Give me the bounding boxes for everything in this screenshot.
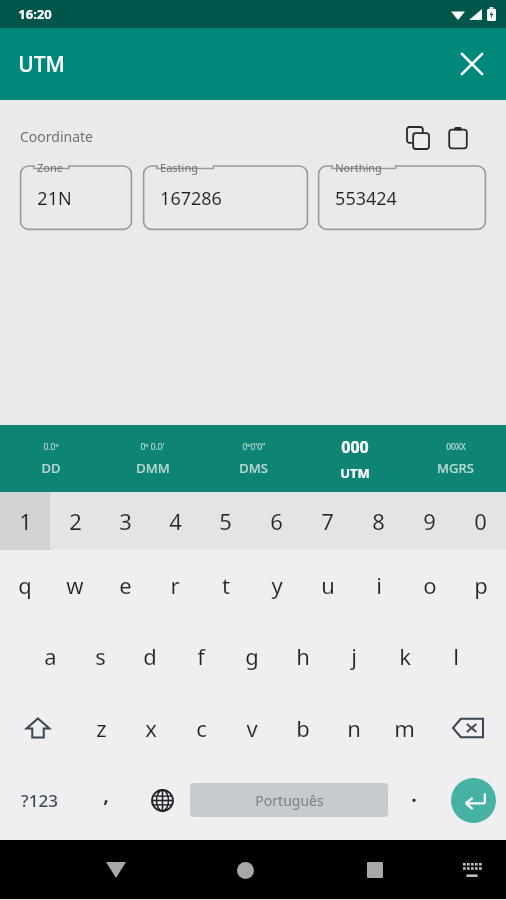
button[interactable]: Enter — [440, 764, 506, 836]
button[interactable]: q — [0, 550, 50, 620]
staticText: 21N — [37, 186, 72, 211]
staticText: q — [18, 570, 32, 600]
button[interactable]: f — [175, 620, 226, 692]
button[interactable]: h — [277, 620, 328, 692]
button[interactable]: 00XX — [405, 425, 506, 492]
staticText: Zone — [37, 160, 63, 175]
button[interactable]: y — [251, 550, 302, 620]
staticText: e — [119, 570, 132, 600]
button[interactable]: 6 — [251, 492, 302, 550]
staticText: 6 — [270, 506, 283, 536]
button[interactable]: , — [78, 764, 134, 836]
staticText: n — [347, 713, 361, 743]
button[interactable]: s — [75, 620, 125, 692]
staticText: 000 — [341, 436, 369, 458]
button[interactable]: Northing — [318, 160, 486, 230]
button[interactable]: 0.0º — [0, 425, 102, 492]
button[interactable]: . — [388, 764, 440, 836]
button[interactable]: 8 — [353, 492, 404, 550]
button[interactable]: m — [379, 692, 430, 764]
button[interactable]: t — [200, 550, 251, 620]
button[interactable]: x — [126, 692, 176, 764]
staticText: b — [296, 713, 310, 743]
staticText: UTM — [340, 464, 370, 482]
button[interactable]: c — [176, 692, 226, 764]
button[interactable]: p — [455, 550, 506, 620]
staticText: DD — [41, 459, 61, 477]
staticText: 0.0º — [43, 441, 59, 453]
button[interactable]: 0º0'0" — [203, 425, 304, 492]
button[interactable]: 1 — [0, 492, 50, 550]
button[interactable]: 000 — [304, 425, 405, 492]
button[interactable]: Home — [217, 842, 273, 898]
staticText: g — [245, 641, 259, 671]
staticText: 3 — [119, 506, 132, 536]
staticText: 5 — [219, 506, 232, 536]
button[interactable]: 2 — [50, 492, 100, 550]
button[interactable]: Back — [88, 842, 144, 898]
staticText: 00XX — [446, 441, 466, 453]
staticText: 0º0'0" — [242, 441, 266, 453]
staticText: h — [296, 641, 310, 671]
staticText: v — [246, 713, 258, 743]
staticText: a — [44, 641, 57, 671]
staticText: 167286 — [160, 186, 222, 211]
button[interactable]: Close — [450, 42, 494, 86]
staticText: p — [474, 570, 488, 600]
button[interactable]: Change language — [134, 764, 190, 836]
button[interactable]: b — [277, 692, 328, 764]
staticText: . — [411, 781, 417, 808]
button[interactable]: 7 — [302, 492, 353, 550]
button[interactable]: e — [100, 550, 150, 620]
button[interactable]: z — [76, 692, 126, 764]
button[interactable]: u — [302, 550, 353, 620]
button[interactable]: Recents — [347, 842, 403, 898]
staticText: f — [197, 641, 205, 671]
button[interactable]: Português — [190, 783, 388, 817]
button[interactable]: Shift — [0, 692, 76, 764]
staticText: 9 — [423, 506, 436, 536]
button[interactable]: l — [430, 620, 481, 692]
button[interactable]: 5 — [200, 492, 251, 550]
button[interactable]: r — [150, 550, 200, 620]
button[interactable]: w — [50, 550, 100, 620]
staticText: Coordinate — [20, 127, 93, 146]
button[interactable]: Easting — [143, 160, 308, 230]
staticText: m — [394, 713, 415, 743]
staticText: l — [453, 641, 459, 671]
staticText: 16:20 — [18, 5, 52, 23]
staticText: Easting — [160, 160, 198, 175]
button[interactable]: Paste — [438, 118, 478, 158]
button[interactable]: k — [379, 620, 430, 692]
button[interactable]: i — [353, 550, 404, 620]
button[interactable]: 0 — [455, 492, 506, 550]
button[interactable]: g — [226, 620, 277, 692]
staticText: y — [271, 570, 283, 600]
staticText: i — [376, 570, 382, 600]
button[interactable]: d — [125, 620, 175, 692]
button[interactable]: n — [328, 692, 379, 764]
staticText: , — [103, 781, 109, 808]
button[interactable]: a — [25, 620, 75, 692]
staticText: u — [321, 570, 335, 600]
button[interactable]: Copy — [398, 118, 438, 158]
staticText: j — [351, 641, 357, 671]
staticText: Português — [255, 791, 324, 810]
button[interactable]: Backspace — [430, 692, 506, 764]
button[interactable]: ?123 — [0, 764, 78, 836]
staticText: 1 — [19, 506, 32, 536]
button[interactable]: 9 — [404, 492, 455, 550]
staticText: c — [196, 713, 207, 743]
button[interactable]: 4 — [150, 492, 200, 550]
staticText: k — [399, 641, 411, 671]
button[interactable]: Switch keyboard — [444, 842, 500, 898]
staticText: z — [96, 713, 107, 743]
button[interactable]: 0º 0.0' — [102, 425, 203, 492]
button[interactable]: Zone — [20, 160, 132, 230]
staticText: x — [145, 713, 157, 743]
staticText: 553424 — [335, 186, 397, 211]
button[interactable]: j — [328, 620, 379, 692]
button[interactable]: 3 — [100, 492, 150, 550]
button[interactable]: o — [404, 550, 455, 620]
button[interactable]: v — [226, 692, 277, 764]
